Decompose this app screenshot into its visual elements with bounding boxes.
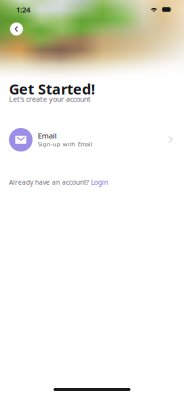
staticText: Let's create your account [9, 94, 91, 104]
staticText: Already have an account? [9, 178, 91, 187]
staticText: 1:24 [16, 4, 30, 15]
staticText: Login [91, 178, 108, 187]
button[interactable]: Back [5, 18, 27, 40]
button[interactable]: Already have an account? [9, 179, 176, 186]
staticText: Sign-up with Email [38, 140, 93, 148]
staticText: Email [38, 131, 57, 141]
button[interactable]: Email [9, 128, 176, 152]
staticText: Get Started! [9, 79, 95, 99]
